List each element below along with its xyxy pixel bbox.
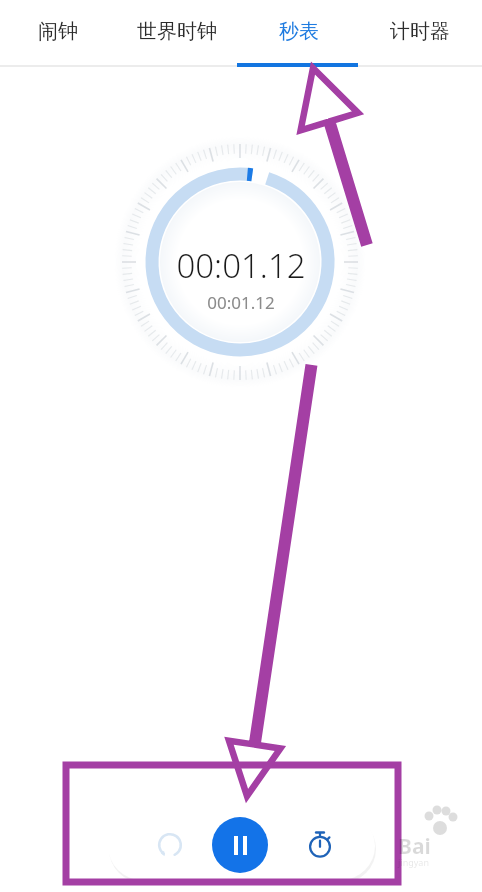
staticText: 计时器 [390, 19, 450, 44]
staticText: 00:01.12 [207, 291, 275, 314]
staticText: jingyan [398, 856, 429, 868]
staticText: 秒表 [279, 19, 319, 44]
staticText: Bai [398, 832, 431, 861]
button[interactable]: 世界时钟 [111, 0, 243, 62]
staticText: 00:01.12 [176, 243, 306, 288]
staticText: 闹钟 [38, 19, 78, 44]
button[interactable]: 秒表 [253, 0, 345, 62]
staticText: 世界时钟 [137, 19, 217, 44]
button[interactable]: 闹钟 [12, 0, 104, 62]
button[interactable]: Pause [212, 817, 268, 873]
button[interactable]: Reset [144, 819, 196, 871]
button[interactable]: Lap [294, 819, 346, 871]
button[interactable]: 计时器 [360, 0, 480, 62]
